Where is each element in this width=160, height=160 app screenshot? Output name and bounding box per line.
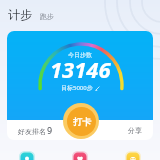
- staticText: 9: [47, 124, 53, 136]
- staticText: 计步: [8, 7, 32, 22]
- staticText: 好友排名: [18, 127, 46, 136]
- staticText: 打卡: [73, 116, 91, 127]
- button[interactable]: 分享: [128, 126, 142, 135]
- button[interactable]: 计步: [8, 7, 32, 22]
- staticText: 今日步数: [68, 51, 92, 59]
- button[interactable]: 好友排名: [18, 124, 53, 136]
- button[interactable]: Heart: [73, 152, 87, 160]
- button[interactable]: 跑步: [40, 12, 54, 21]
- staticText: 目标5000步: [61, 84, 93, 92]
- staticText: 跑步: [40, 12, 54, 21]
- staticText: 分享: [128, 126, 142, 135]
- button[interactable]: 目标5000步: [61, 84, 100, 92]
- button[interactable]: Sleep: [126, 152, 140, 160]
- staticText: 13146: [50, 54, 111, 84]
- button[interactable]: 打卡: [63, 103, 99, 139]
- button[interactable]: Steps: [20, 152, 34, 160]
